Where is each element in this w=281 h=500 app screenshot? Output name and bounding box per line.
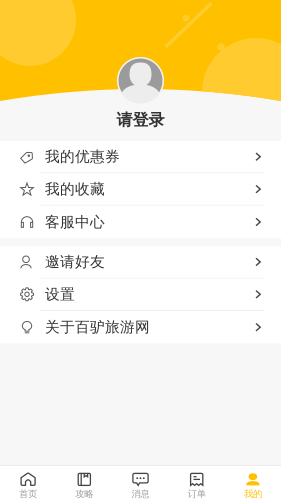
button[interactable]: 设置 [0, 279, 281, 311]
staticText: 消息 [131, 488, 149, 500]
button[interactable]: 我的优惠券 [0, 141, 281, 173]
button[interactable]: 我的 [225, 466, 281, 500]
staticText: 订单 [188, 488, 206, 500]
staticText: 设置 [45, 285, 75, 303]
button[interactable]: 客服中心 [0, 206, 281, 238]
staticText: 首页 [19, 488, 37, 500]
staticText: 邀请好友 [45, 253, 105, 271]
staticText: 我的 [244, 488, 262, 500]
button[interactable]: 关于百驴旅游网 [0, 311, 281, 343]
staticText: 我的收藏 [45, 180, 105, 198]
staticText: 请登录 [116, 110, 164, 130]
button[interactable]: 消息 [112, 466, 169, 500]
button[interactable]: 邀请好友 [0, 246, 281, 279]
staticText: 客服中心 [45, 213, 105, 231]
staticText: 攻略 [75, 488, 93, 500]
staticText: 关于百驴旅游网 [45, 318, 150, 336]
button[interactable]: 攻略 [56, 466, 112, 500]
staticText: 我的优惠券 [45, 148, 120, 166]
button[interactable]: 我的收藏 [0, 173, 281, 206]
button[interactable]: 订单 [169, 466, 225, 500]
button[interactable]: 首页 [0, 466, 56, 500]
